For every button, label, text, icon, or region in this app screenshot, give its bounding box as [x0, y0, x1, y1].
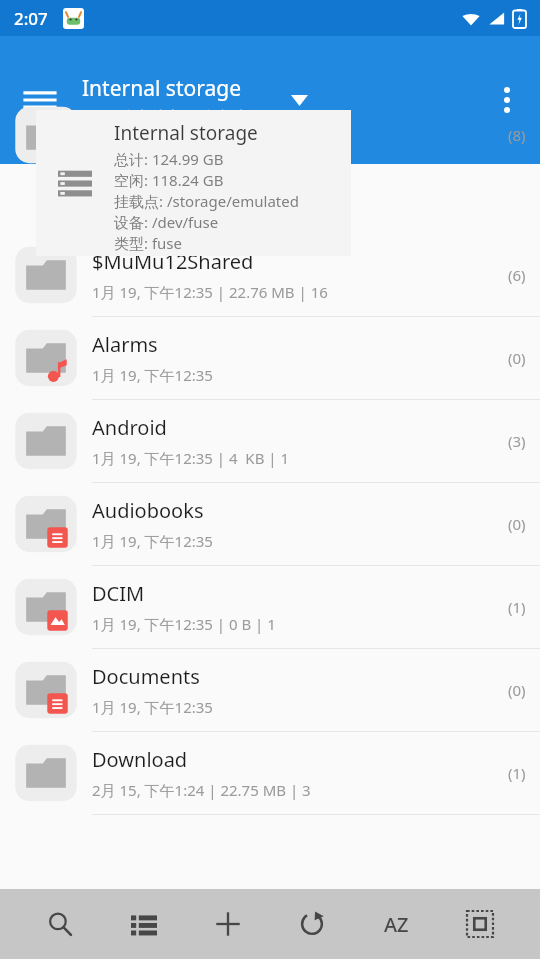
staticText: (8) — [508, 125, 526, 145]
staticText: 1月 19, 下午12:35 — [92, 697, 213, 717]
staticText: 总计: 124.99 GB — [114, 149, 224, 169]
button[interactable]: Search — [36, 900, 84, 948]
staticText: $MuMu12Shared — [92, 248, 254, 275]
button[interactable]: 1月 19, 下午1:32 | 685.29 KB | 21 — [0, 100, 540, 170]
button[interactable]: Download — [0, 732, 540, 815]
staticText: Android — [92, 414, 167, 441]
staticText: 1月 19, 下午12:35 | 0 B | 1 — [92, 614, 276, 634]
staticText: (3) — [508, 431, 526, 451]
staticText: 1月 19, 下午12:35 — [92, 531, 213, 551]
staticText: (6) — [508, 265, 526, 285]
staticText: Audiobooks — [92, 497, 204, 524]
button[interactable]: More options — [482, 75, 532, 125]
staticText: 2:07 — [14, 7, 48, 30]
staticText: 类型: fuse — [114, 233, 182, 253]
button[interactable]: Change storage — [278, 79, 320, 121]
staticText: 1月 19, 下午12:35 — [92, 365, 213, 385]
button[interactable]: Android — [0, 400, 540, 483]
staticText: Internal storage — [82, 74, 241, 103]
button[interactable]: $MuMu12Shared — [0, 234, 540, 317]
button[interactable]: Documents — [0, 649, 540, 732]
button[interactable]: Add — [204, 900, 252, 948]
button[interactable]: Alarms — [0, 317, 540, 400]
staticText: 设备: /dev/fuse — [114, 212, 219, 232]
staticText: Download — [92, 746, 188, 773]
staticText: Alarms — [92, 331, 158, 358]
staticText: 2月 15, 下午1:24 | 22.75 MB | 3 — [92, 780, 311, 800]
button[interactable]: Refresh — [288, 900, 336, 948]
button[interactable]: Audiobooks — [0, 483, 540, 566]
staticText: 挂载点: /storage/emulated — [114, 191, 299, 211]
staticText: 1月 19, 下午1:32 | 685.29 KB | 21 — [92, 125, 328, 145]
staticText: (1) — [508, 597, 526, 617]
staticText: (1) — [508, 763, 526, 783]
staticText: AZ — [384, 911, 409, 938]
button[interactable]: List view — [120, 900, 168, 948]
staticText: Documents — [92, 663, 200, 690]
staticText: (0) — [508, 514, 526, 534]
button[interactable]: DCIM — [0, 566, 540, 649]
staticText: (0) — [508, 680, 526, 700]
staticText: (0) — [508, 348, 526, 368]
staticText: DCIM — [92, 580, 145, 607]
staticText: 18 个文件夹, 1 个文件 — [100, 106, 247, 126]
button[interactable]: Open navigation drawer — [14, 74, 66, 126]
staticText: 空闲: 118.24 GB — [114, 170, 224, 190]
staticText: 1月 19, 下午12:35 | 4 KB | 1 — [92, 448, 290, 468]
staticText: Internal storage — [114, 120, 258, 146]
button[interactable]: AZ — [372, 900, 420, 948]
staticText: 1月 19, 下午12:35 | 22.76 MB | 16 — [92, 282, 328, 302]
button[interactable]: Select all — [456, 900, 504, 948]
button[interactable]: Internal storage — [82, 74, 247, 126]
